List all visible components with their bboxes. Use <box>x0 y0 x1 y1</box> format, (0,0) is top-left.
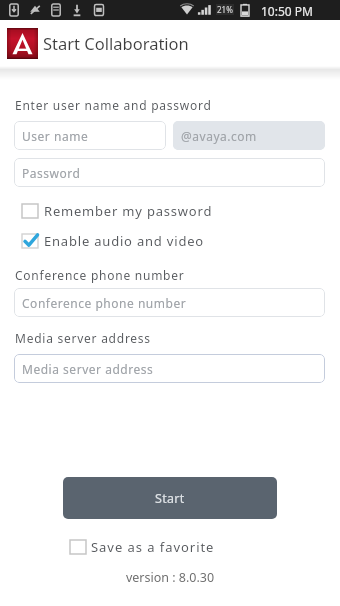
staticText: Conference phone number <box>15 267 185 283</box>
button[interactable]: Enable audio and video <box>21 232 204 250</box>
button[interactable]: Remember my password <box>21 202 213 220</box>
staticText: Media server address <box>15 330 151 346</box>
button[interactable]: User name <box>14 121 166 150</box>
button[interactable]: Password <box>14 158 325 187</box>
staticText: Start <box>155 490 185 507</box>
staticText: Remember my password <box>44 202 213 220</box>
staticText: 10:50 PM <box>261 3 313 19</box>
button[interactable]: Media server address <box>14 354 325 383</box>
staticText: Enter user name and password <box>15 97 212 113</box>
staticText: Password <box>22 165 81 181</box>
staticText: Enable audio and video <box>44 232 204 250</box>
staticText: Save as a favorite <box>91 538 215 556</box>
staticText: Start Collaboration <box>43 32 189 54</box>
staticText: 21% <box>217 4 233 15</box>
other: Avaya <box>7 28 38 59</box>
button[interactable]: Conference phone number <box>14 288 325 317</box>
staticText: version : 8.0.30 <box>0 569 340 586</box>
button[interactable]: Save as a favorite <box>69 538 215 556</box>
button[interactable]: @avaya.com <box>173 121 325 150</box>
button[interactable]: Start <box>63 477 277 519</box>
staticText: Media server address <box>22 361 154 377</box>
staticText: Conference phone number <box>22 295 187 311</box>
staticText: User name <box>22 128 89 144</box>
staticText: @avaya.com <box>181 128 257 144</box>
button[interactable]: Avaya <box>0 20 340 66</box>
